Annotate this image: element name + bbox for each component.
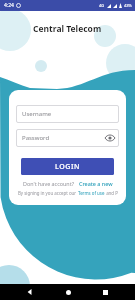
button[interactable]: Create a new [79,180,113,187]
staticText: Username [22,110,52,118]
button[interactable]: Home [60,284,76,300]
staticText: 4G [99,3,105,8]
button[interactable]: Back [22,284,38,300]
staticText: Don't have account? [23,180,79,187]
staticText: Password [22,134,50,142]
button[interactable]: Username [16,105,119,123]
staticText: and P [105,190,118,196]
staticText: LOGIN [55,162,81,172]
staticText: Central Telecom [33,23,102,35]
button[interactable]: Password [16,129,119,147]
other: Show password [106,134,114,142]
staticText: By signing in you accept our [18,190,78,196]
staticText: 43% [124,3,132,8]
staticText: 4:24 [4,2,14,9]
button[interactable]: Terms of use [78,190,105,196]
button[interactable]: LOGIN [21,158,114,175]
button[interactable]: Recents [97,284,113,300]
